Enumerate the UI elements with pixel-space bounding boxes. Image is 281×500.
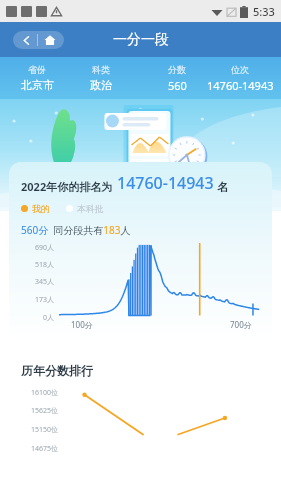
staticText: 5:33 bbox=[253, 4, 275, 19]
staticText: 15150位 bbox=[31, 425, 59, 435]
staticText: 省份 bbox=[28, 64, 46, 75]
staticText: 北京市 bbox=[21, 78, 54, 92]
staticText: 14675位 bbox=[31, 444, 59, 454]
staticText: 0人 bbox=[43, 313, 55, 323]
staticText: 518人 bbox=[35, 260, 55, 270]
staticText: 700分 bbox=[230, 319, 252, 330]
staticText: 345人 bbox=[35, 277, 55, 287]
staticText: 560分 同分段共有183人 bbox=[21, 223, 131, 237]
staticText: 2022年你的排名为 bbox=[21, 179, 113, 194]
staticText: 分数 bbox=[168, 64, 186, 75]
staticText: 14760-14943 bbox=[117, 172, 214, 194]
staticText: 560 bbox=[168, 78, 187, 93]
button[interactable]: 本科批 bbox=[66, 203, 104, 214]
staticText: 名 bbox=[217, 180, 228, 194]
staticText: 690人 bbox=[35, 243, 55, 253]
staticText: 本科批 bbox=[77, 203, 104, 214]
button[interactable]: 我的 bbox=[21, 203, 54, 214]
staticText: 科类 bbox=[92, 64, 110, 75]
staticText: 16100位 bbox=[31, 388, 59, 398]
staticText: 100分 bbox=[71, 319, 93, 330]
staticText: 历年分数排行 bbox=[21, 363, 93, 378]
staticText: 位次 bbox=[231, 64, 249, 75]
button[interactable]: Back and Home bbox=[13, 31, 64, 49]
staticText: 一分一段 bbox=[113, 31, 169, 49]
staticText: 我的 bbox=[32, 203, 50, 214]
staticText: 173人 bbox=[35, 295, 55, 305]
staticText: 政治 bbox=[90, 78, 112, 92]
staticText: 15625位 bbox=[31, 406, 59, 416]
staticText: 14760-14943 bbox=[207, 78, 274, 93]
